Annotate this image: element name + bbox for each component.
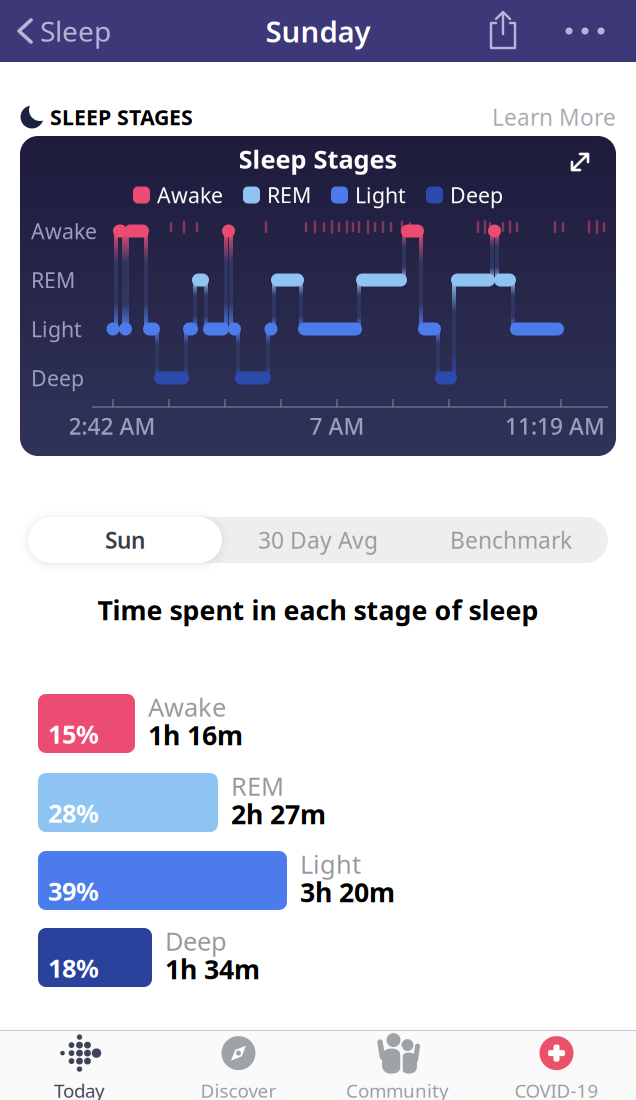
staticText: Today xyxy=(54,1078,105,1100)
button[interactable]: More xyxy=(565,27,604,34)
button[interactable]: Sun xyxy=(28,517,222,563)
staticText: Learn More xyxy=(492,102,616,132)
staticText: Deep xyxy=(450,181,503,209)
staticText: REM xyxy=(231,769,284,803)
staticText: REM xyxy=(31,266,75,294)
staticText: Awake xyxy=(148,690,226,724)
button[interactable]: Today xyxy=(0,1035,159,1100)
staticText: 1h 16m xyxy=(148,717,243,753)
staticText: Light xyxy=(31,315,82,343)
staticText: Light xyxy=(355,181,406,209)
staticText: COVID-19 xyxy=(514,1078,598,1100)
button[interactable]: Sleep xyxy=(17,12,111,50)
staticText: 18% xyxy=(48,951,99,985)
staticText: 1h 34m xyxy=(165,951,260,987)
staticText: Community xyxy=(346,1078,449,1100)
staticText: 2h 27m xyxy=(231,796,326,832)
staticText: 30 Day Avg xyxy=(258,525,378,555)
staticText: Benchmark xyxy=(450,525,572,555)
staticText: 7 AM xyxy=(309,411,364,441)
button[interactable]: 30 Day Avg xyxy=(222,517,414,563)
staticText: Deep xyxy=(165,924,227,958)
staticText: Light xyxy=(300,847,361,881)
staticText: Discover xyxy=(200,1078,276,1100)
staticText: Sleep Stages xyxy=(238,142,397,176)
staticText: REM xyxy=(267,181,311,209)
button[interactable]: Learn More xyxy=(492,102,616,132)
staticText: 28% xyxy=(48,796,99,830)
staticText: 11:19 AM xyxy=(505,411,605,441)
staticText: 2:42 AM xyxy=(68,411,155,441)
staticText: 39% xyxy=(48,874,99,908)
staticText: 15% xyxy=(48,717,99,751)
staticText: SLEEP STAGES xyxy=(50,103,193,131)
button[interactable]: Discover xyxy=(159,1035,318,1100)
staticText: Sunday xyxy=(265,11,370,50)
staticText: 3h 20m xyxy=(300,874,395,910)
button[interactable]: COVID-19 xyxy=(477,1035,636,1100)
staticText: Awake xyxy=(31,217,97,245)
staticText: Deep xyxy=(31,364,84,392)
staticText: Time spent in each stage of sleep xyxy=(97,592,538,628)
button[interactable]: Benchmark xyxy=(415,517,607,563)
button[interactable]: Share xyxy=(485,10,521,54)
button[interactable]: Expand xyxy=(567,149,593,175)
staticText: Awake xyxy=(157,181,223,209)
staticText: Sun xyxy=(105,525,145,555)
button[interactable]: Community xyxy=(318,1035,477,1100)
staticText: Sleep xyxy=(40,12,111,50)
